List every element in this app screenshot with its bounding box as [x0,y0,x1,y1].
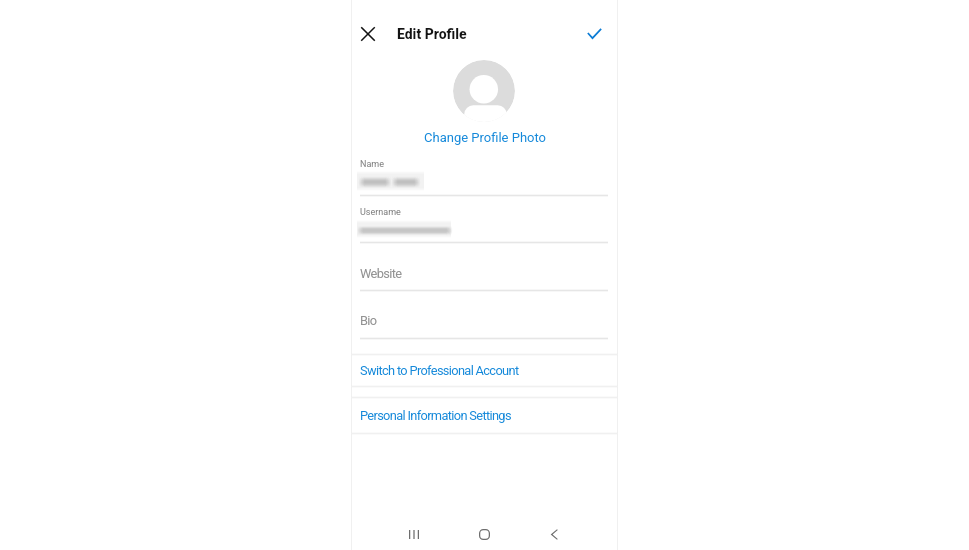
button[interactable]: Change Profile Photo [416,130,553,148]
button[interactable]: Recent apps [393,517,435,550]
staticText: Username [360,207,401,218]
button[interactable]: Change profile photo [453,60,515,122]
button[interactable]: Back [533,517,575,550]
staticText: Change Profile Photo [424,130,546,145]
button[interactable]: Close [351,17,384,50]
staticText: Switch to Professional Account [360,363,519,378]
staticText: Personal Information Settings [360,408,511,423]
button[interactable]: Bio [351,291,618,338]
button[interactable]: Name [351,150,618,195]
button[interactable]: Home [463,517,505,550]
button[interactable]: Username [351,196,618,242]
button[interactable]: Website [351,243,618,290]
staticText: Bio [360,313,377,328]
staticText: Name [360,159,384,170]
staticText: Edit Profile [397,26,467,42]
button[interactable]: Save [577,16,611,50]
staticText: Website [360,266,402,281]
button[interactable]: Switch to Professional Account [351,355,618,385]
button[interactable]: Personal Information Settings [351,398,618,433]
